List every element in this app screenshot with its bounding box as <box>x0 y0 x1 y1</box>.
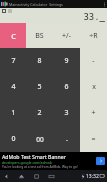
staticText: 4 <box>11 82 16 92</box>
staticText: Mainactivity Calculator Settings <box>9 2 63 7</box>
staticText: +/- <box>62 31 71 41</box>
button[interactable]: +/- <box>53 23 80 48</box>
staticText: 5 <box>37 82 42 92</box>
button[interactable]: ÷R <box>80 23 107 48</box>
button[interactable]: . <box>53 126 80 152</box>
button[interactable]: Open ad <box>96 157 105 165</box>
staticText: . <box>66 134 68 144</box>
staticText: 33._ <box>83 10 105 22</box>
button[interactable]: x <box>80 74 107 100</box>
staticText: 0 <box>11 134 16 144</box>
button[interactable]: 1 <box>0 100 26 126</box>
button[interactable]: Home <box>17 172 26 181</box>
button[interactable]: Back <box>2 172 11 181</box>
button[interactable]: 00 <box>26 126 53 152</box>
staticText: 00 <box>36 135 44 144</box>
button[interactable]: Keyboard <box>47 172 56 181</box>
staticText: x <box>92 82 96 92</box>
staticText: 8 <box>37 56 42 66</box>
staticText: 3 <box>64 108 69 118</box>
button[interactable]: = <box>80 126 107 152</box>
button[interactable]: + <box>80 100 107 126</box>
button[interactable]: 2 <box>26 100 53 126</box>
staticText: + <box>91 108 96 118</box>
staticText: 1 <box>11 108 16 118</box>
button[interactable]: C <box>0 23 26 48</box>
staticText: 6 <box>64 82 69 92</box>
button[interactable]: 0 <box>0 126 26 152</box>
button[interactable]: BS <box>26 23 53 48</box>
staticText: = <box>91 134 96 144</box>
staticText: 9 <box>64 56 69 66</box>
staticText: You're looking at a test ad from AdMob. … <box>2 165 78 169</box>
staticText: - <box>92 56 95 66</box>
staticText: BS <box>35 31 44 41</box>
staticText: 13:32 <box>86 173 99 180</box>
staticText: developers.google.com/admob <box>2 160 52 165</box>
button[interactable]: 8 <box>26 48 53 74</box>
staticText: AdMob Test Smart Banner <box>2 153 66 160</box>
button[interactable]: 4 <box>0 74 26 100</box>
button[interactable]: - <box>80 48 107 74</box>
button[interactable]: Recent apps <box>32 172 41 181</box>
button[interactable]: 6 <box>53 74 80 100</box>
button[interactable]: 3 <box>53 100 80 126</box>
button[interactable]: 7 <box>0 48 26 74</box>
button[interactable]: AdMob Test Smart Banner <box>0 152 107 170</box>
staticText: ÷R <box>89 31 98 41</box>
button[interactable]: 9 <box>53 48 80 74</box>
button[interactable]: 5 <box>26 74 53 100</box>
staticText: 7 <box>11 56 16 66</box>
staticText: 2 <box>37 108 42 118</box>
staticText: C <box>11 31 16 41</box>
